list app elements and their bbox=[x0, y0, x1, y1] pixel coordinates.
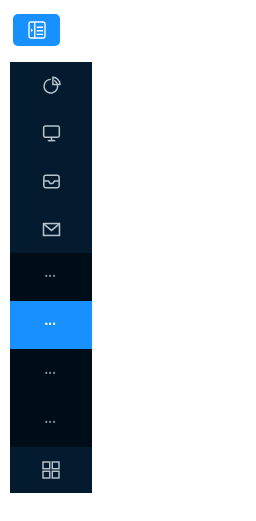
staticText: ••• bbox=[45, 320, 57, 330]
button[interactable]: Inbox bbox=[10, 157, 92, 205]
staticText: ••• bbox=[45, 272, 57, 282]
staticText: ••• bbox=[45, 369, 57, 379]
button[interactable]: Mail bbox=[10, 205, 92, 253]
button[interactable]: Dashboard bbox=[10, 62, 92, 109]
button[interactable]: Apps bbox=[10, 447, 92, 493]
button[interactable]: ••• bbox=[10, 253, 92, 301]
staticText: ••• bbox=[45, 418, 57, 428]
button[interactable]: Monitor bbox=[10, 109, 92, 157]
button[interactable]: ••• bbox=[10, 398, 92, 447]
button[interactable]: ••• bbox=[10, 349, 92, 398]
button[interactable]: Toggle sidebar bbox=[13, 14, 60, 46]
button[interactable]: ••• bbox=[10, 301, 92, 349]
